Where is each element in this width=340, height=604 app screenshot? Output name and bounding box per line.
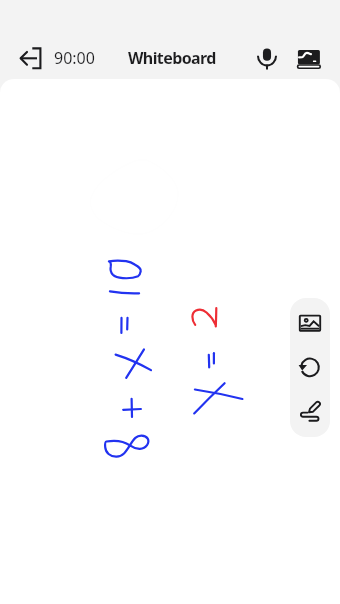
button[interactable]: Undo bbox=[290, 348, 330, 388]
button[interactable]: Exit bbox=[11, 38, 51, 78]
staticText: Whiteboard bbox=[128, 47, 216, 69]
button[interactable]: Insert image bbox=[290, 303, 330, 343]
button[interactable]: Present screen bbox=[291, 38, 331, 78]
staticText: 90:00 bbox=[54, 47, 95, 69]
button[interactable]: Pen bbox=[290, 392, 330, 432]
button[interactable]: Microphone bbox=[247, 38, 287, 78]
